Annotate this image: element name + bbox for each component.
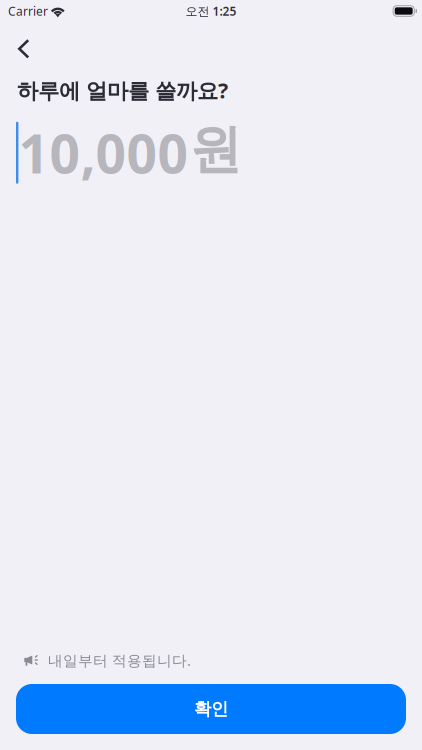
- button[interactable]: 확인: [16, 684, 406, 734]
- button[interactable]: Back: [0, 26, 56, 68]
- staticText: 하루에 얼마를 쓸까요?: [17, 76, 228, 104]
- staticText: Carrier: [8, 3, 48, 19]
- staticText: 원: [189, 118, 241, 182]
- staticText: 오전 1:25: [185, 3, 236, 19]
- staticText: 확인: [194, 698, 228, 720]
- staticText: 내일부터 적용됩니다.: [48, 650, 191, 670]
- staticText: 10,000: [18, 117, 188, 188]
